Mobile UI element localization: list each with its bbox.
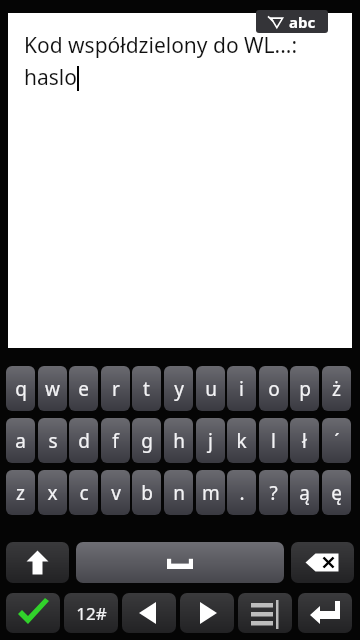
button[interactable]: m (196, 470, 225, 515)
staticText: . (239, 480, 245, 506)
button[interactable]: Shift (6, 542, 69, 583)
staticText: k (236, 428, 247, 454)
staticText: ą (299, 480, 310, 506)
button[interactable]: t (132, 366, 161, 411)
button[interactable]: r (101, 366, 130, 411)
staticText: ´ (334, 428, 340, 454)
staticText: d (78, 428, 90, 454)
button[interactable]: ł (290, 418, 319, 463)
staticText: w (45, 376, 60, 402)
staticText: z (16, 480, 25, 506)
button[interactable]: h (164, 418, 193, 463)
staticText: r (112, 376, 120, 402)
staticText: haslo (24, 63, 77, 92)
button[interactable]: ą (290, 470, 319, 515)
button[interactable]: q (6, 366, 35, 411)
staticText: f (112, 428, 119, 454)
button[interactable]: s (38, 418, 67, 463)
button[interactable]: w (38, 366, 67, 411)
staticText: m (202, 480, 220, 506)
button[interactable]: e (69, 366, 98, 411)
button[interactable]: Move cursor right (180, 593, 234, 633)
staticText: s (48, 428, 58, 454)
button[interactable]: b (132, 470, 161, 515)
staticText: x (47, 480, 58, 506)
staticText: q (15, 376, 27, 402)
staticText: u (205, 376, 217, 402)
staticText: l (271, 428, 276, 454)
button[interactable]: Confirm (6, 593, 60, 633)
button[interactable]: o (259, 366, 288, 411)
staticText: b (141, 480, 153, 506)
staticText: c (79, 480, 89, 506)
button[interactable]: u (196, 366, 225, 411)
button[interactable]: ? (259, 470, 288, 515)
button[interactable]: ż (322, 366, 351, 411)
staticText: e (78, 376, 89, 402)
button[interactable]: ę (322, 470, 351, 515)
button[interactable]: p (290, 366, 319, 411)
button[interactable]: Enter (298, 593, 352, 633)
staticText: o (268, 376, 280, 402)
button[interactable]: z (6, 470, 35, 515)
staticText: Kod współdzielony do WL...: (24, 31, 298, 60)
staticText: ? (269, 480, 278, 506)
staticText: i (239, 376, 244, 402)
staticText: 12# (76, 602, 107, 625)
staticText: v (111, 480, 121, 506)
button[interactable]: n (164, 470, 193, 515)
button[interactable]: ´ (322, 418, 351, 463)
button[interactable]: Backspace (291, 542, 354, 583)
staticText: t (143, 376, 150, 402)
staticText: n (173, 480, 185, 506)
button[interactable]: y (164, 366, 193, 411)
button[interactable]: d (69, 418, 98, 463)
staticText: g (141, 428, 153, 454)
button[interactable]: Options menu (238, 593, 292, 633)
button[interactable]: Kod współdzielony do WL...: (8, 13, 352, 348)
staticText: h (173, 428, 185, 454)
staticText: ż (332, 376, 341, 402)
button[interactable]: Move cursor left (122, 593, 176, 633)
button[interactable]: g (132, 418, 161, 463)
button[interactable]: abc (256, 10, 328, 33)
staticText: a (15, 428, 26, 454)
button[interactable]: j (196, 418, 225, 463)
button[interactable]: l (259, 418, 288, 463)
button[interactable]: . (227, 470, 256, 515)
staticText: abc (289, 12, 316, 32)
staticText: j (208, 428, 213, 454)
button[interactable]: x (38, 470, 67, 515)
staticText: ę (331, 480, 342, 506)
button[interactable]: c (69, 470, 98, 515)
button[interactable]: v (101, 470, 130, 515)
staticText: ł (302, 428, 307, 454)
button[interactable]: f (101, 418, 130, 463)
staticText: p (299, 376, 311, 402)
button[interactable]: k (227, 418, 256, 463)
button[interactable]: Numbers and symbols (64, 593, 118, 633)
button[interactable]: Space (76, 542, 284, 583)
button[interactable]: a (6, 418, 35, 463)
button[interactable]: i (227, 366, 256, 411)
staticText: y (174, 376, 184, 402)
